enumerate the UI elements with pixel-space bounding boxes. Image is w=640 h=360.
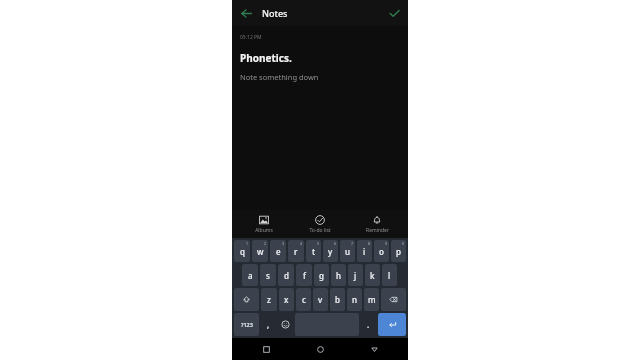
staticText: Note something down: [240, 72, 319, 82]
button[interactable]: l: [382, 264, 397, 286]
staticText: o: [379, 246, 384, 257]
staticText: Phonetics.: [240, 51, 292, 65]
staticText: b: [335, 294, 340, 305]
button[interactable]: Albums: [239, 210, 289, 238]
button[interactable]: .: [361, 313, 376, 336]
staticText: 05:12 PM: [240, 34, 262, 41]
staticText: a: [248, 270, 253, 281]
button[interactable]: r: [288, 240, 304, 262]
button[interactable]: Back: [354, 338, 394, 360]
button[interactable]: p: [391, 240, 406, 262]
staticText: v: [318, 294, 323, 305]
button[interactable]: Recents: [246, 338, 286, 360]
staticText: n: [352, 294, 358, 305]
button[interactable]: s: [260, 264, 276, 286]
staticText: r: [294, 246, 298, 257]
staticText: w: [257, 246, 264, 257]
button[interactable]: Home: [300, 338, 340, 360]
staticText: u: [345, 246, 351, 257]
staticText: ?123: [241, 321, 253, 328]
staticText: h: [336, 270, 342, 281]
button[interactable]: Save note: [384, 3, 404, 23]
button[interactable]: ,: [261, 313, 276, 336]
button[interactable]: u: [340, 240, 355, 262]
staticText: Notes: [262, 7, 288, 19]
button[interactable]: q: [234, 240, 250, 262]
button[interactable]: b: [330, 288, 345, 311]
staticText: 0: [402, 241, 405, 246]
staticText: d: [284, 270, 289, 281]
button[interactable]: g: [314, 264, 329, 286]
button[interactable]: c: [296, 288, 311, 311]
button[interactable]: d: [278, 264, 294, 286]
button[interactable]: To-do list: [295, 210, 345, 238]
staticText: m: [368, 294, 376, 305]
staticText: .: [367, 319, 370, 330]
staticText: s: [266, 270, 270, 281]
staticText: Albums: [255, 227, 273, 234]
button[interactable]: e: [270, 240, 286, 262]
button[interactable]: Back: [236, 3, 256, 23]
staticText: 9: [385, 241, 388, 246]
button[interactable]: v: [313, 288, 328, 311]
staticText: 1: [246, 241, 249, 246]
staticText: p: [396, 246, 401, 257]
button[interactable]: Enter: [378, 313, 406, 336]
button[interactable]: i: [357, 240, 372, 262]
staticText: t: [312, 246, 316, 257]
staticText: ,: [267, 319, 270, 330]
button[interactable]: f: [296, 264, 312, 286]
staticText: l: [388, 270, 391, 281]
staticText: Reminder: [366, 227, 389, 234]
staticText: f: [303, 270, 306, 281]
button[interactable]: ?123: [234, 313, 259, 336]
button[interactable]: a: [242, 264, 258, 286]
button[interactable]: x: [279, 288, 294, 311]
staticText: q: [240, 246, 245, 257]
button[interactable]: h: [331, 264, 346, 286]
button[interactable]: k: [365, 264, 380, 286]
button[interactable]: z: [261, 288, 277, 311]
staticText: z: [267, 294, 271, 305]
staticText: 7: [351, 241, 354, 246]
staticText: 8: [368, 241, 371, 246]
button[interactable]: Emoji: [278, 313, 293, 336]
staticText: 5: [317, 241, 320, 246]
button[interactable]: y: [323, 240, 338, 262]
staticText: j: [354, 270, 357, 281]
staticText: y: [328, 246, 333, 257]
button[interactable]: t: [306, 240, 321, 262]
button[interactable]: Reminder: [352, 210, 402, 238]
button[interactable]: Shift: [234, 288, 259, 311]
button[interactable]: n: [347, 288, 362, 311]
staticText: g: [319, 270, 324, 281]
staticText: k: [370, 270, 375, 281]
staticText: e: [276, 246, 281, 257]
button[interactable]: j: [348, 264, 363, 286]
staticText: 6: [334, 241, 337, 246]
button[interactable]: o: [374, 240, 389, 262]
staticText: x: [284, 294, 289, 305]
staticText: 2: [264, 241, 267, 246]
staticText: i: [363, 246, 366, 257]
button[interactable]: Backspace: [381, 288, 406, 311]
staticText: 4: [300, 241, 303, 246]
button[interactable]: m: [364, 288, 379, 311]
staticText: c: [302, 294, 306, 305]
button[interactable]: w: [252, 240, 268, 262]
staticText: To-do list: [309, 227, 331, 234]
staticText: 3: [282, 241, 285, 246]
